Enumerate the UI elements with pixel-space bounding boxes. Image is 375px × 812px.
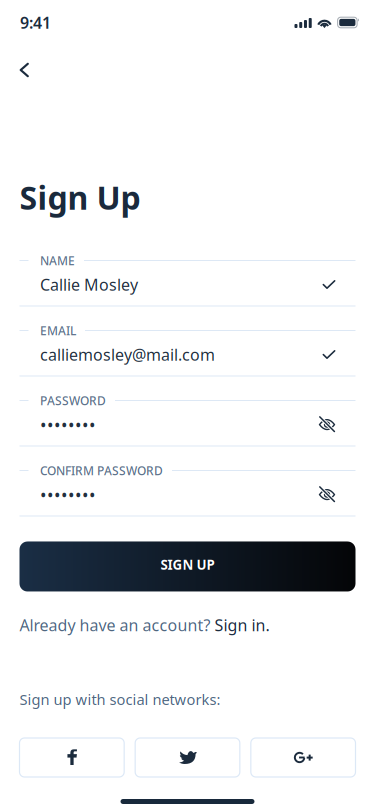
button[interactable]: Show confirm password: [318, 486, 335, 503]
staticText: NAME: [40, 252, 75, 268]
staticText: Callie Mosley: [40, 274, 138, 295]
staticText: CONFIRM PASSWORD: [40, 462, 163, 478]
button[interactable]: SIGN UP: [19, 541, 355, 591]
button[interactable]: Sign in.: [214, 614, 269, 636]
staticText: Sign in.: [214, 614, 269, 636]
staticText: 9:41: [20, 12, 51, 33]
button[interactable]: Sign up with Facebook: [19, 738, 124, 777]
button[interactable]: Sign up with Google Plus: [251, 738, 355, 777]
staticText: PASSWORD: [40, 392, 106, 408]
button[interactable]: Sign up with Twitter: [135, 738, 240, 777]
button[interactable]: Back: [19, 53, 57, 87]
staticText: ••••••••: [40, 483, 96, 506]
staticText: EMAIL: [40, 322, 76, 338]
staticText: Sign up with social networks:: [19, 689, 220, 709]
staticText: SIGN UP: [160, 556, 214, 573]
staticText: ••••••••: [40, 413, 96, 436]
staticText: Already have an account?: [19, 614, 214, 636]
staticText: calliemosley@mail.com: [40, 344, 215, 365]
staticText: Sign Up: [19, 176, 140, 218]
button[interactable]: Show password: [318, 416, 335, 433]
